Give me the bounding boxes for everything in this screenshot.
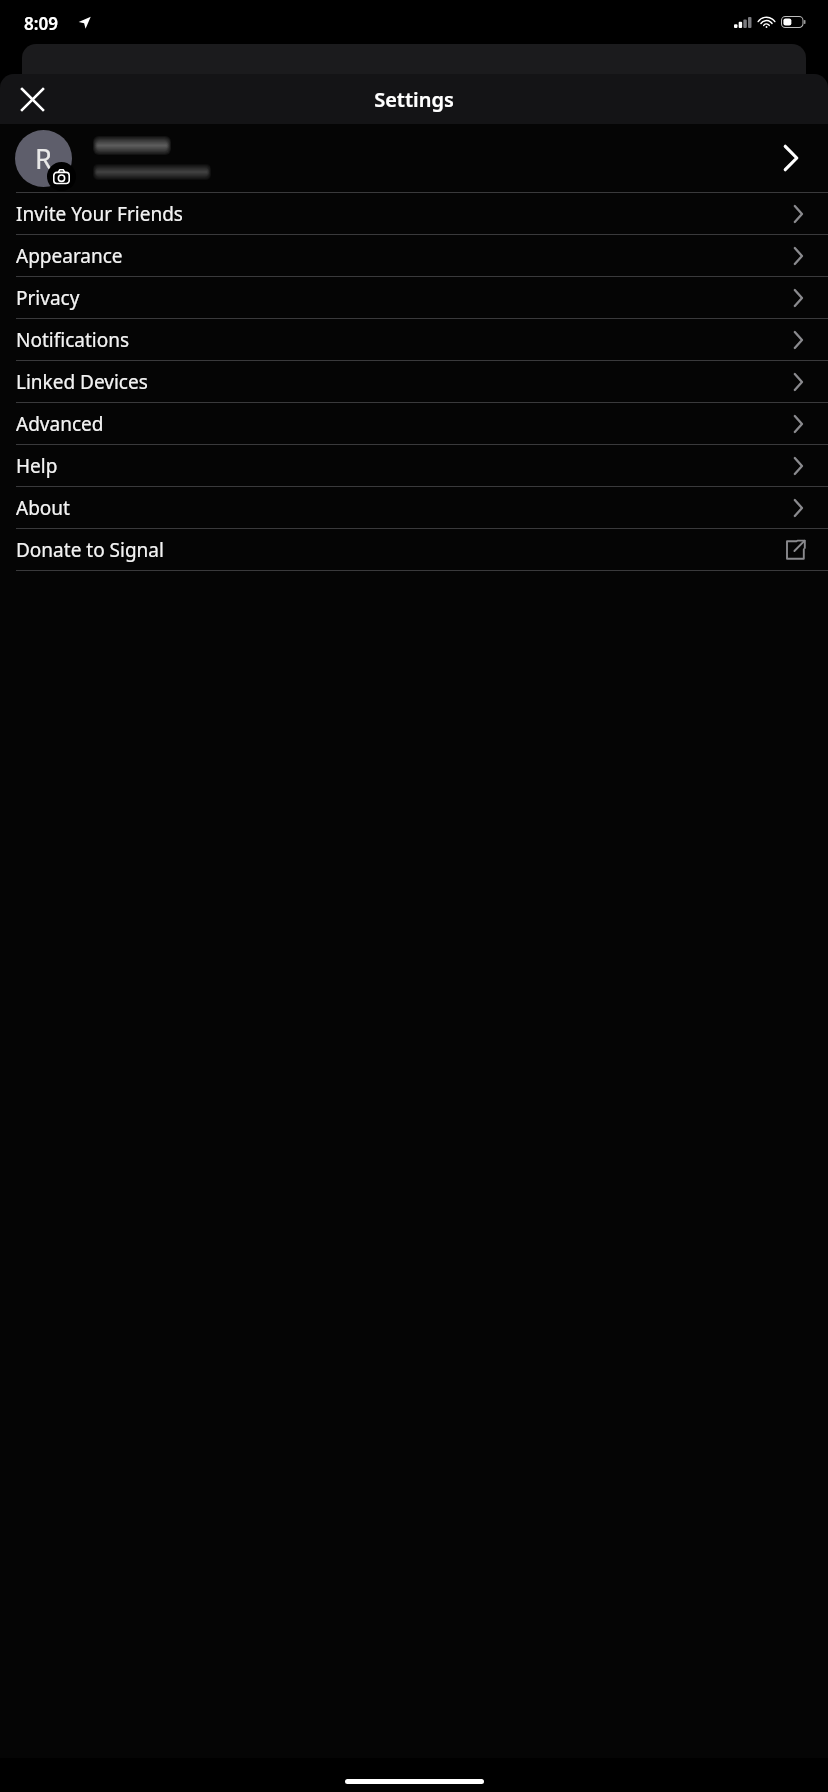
- button[interactable]: R: [0, 124, 828, 192]
- button[interactable]: Appearance: [0, 235, 828, 276]
- staticText: Advanced: [16, 411, 793, 437]
- button[interactable]: Invite Your Friends: [0, 193, 828, 234]
- button[interactable]: Privacy: [0, 277, 828, 318]
- staticText: Invite Your Friends: [16, 201, 793, 227]
- staticText: About: [16, 495, 793, 521]
- staticText: Notifications: [16, 327, 793, 353]
- button[interactable]: Help: [0, 445, 828, 486]
- staticText: Donate to Signal: [16, 537, 785, 563]
- button[interactable]: Notifications: [0, 319, 828, 360]
- button[interactable]: Donate to Signal: [0, 529, 828, 570]
- button[interactable]: Linked Devices: [0, 361, 828, 402]
- staticText: Linked Devices: [16, 369, 793, 395]
- staticText: R: [35, 140, 52, 177]
- button[interactable]: Advanced: [0, 403, 828, 444]
- staticText: Settings: [374, 86, 454, 113]
- staticText: Appearance: [16, 243, 793, 269]
- staticText: 8:09: [24, 12, 58, 35]
- button[interactable]: About: [0, 487, 828, 528]
- button[interactable]: Close: [10, 77, 54, 121]
- staticText: Privacy: [16, 285, 793, 311]
- staticText: Help: [16, 453, 793, 479]
